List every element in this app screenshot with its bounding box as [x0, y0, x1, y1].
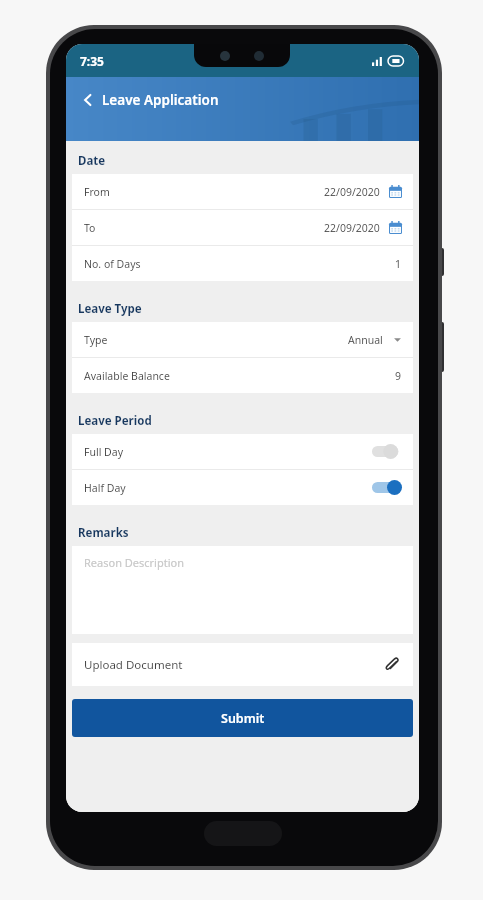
staticText: Leave Period	[78, 413, 152, 429]
staticText: 7:35	[80, 53, 104, 69]
staticText: 22/09/2020	[324, 185, 380, 199]
staticText: Type	[84, 333, 108, 347]
staticText: No. of Days	[84, 257, 141, 271]
button[interactable]: From	[72, 174, 413, 209]
staticText: Date	[78, 153, 106, 169]
staticText: 1	[395, 257, 402, 271]
button[interactable]: Type	[72, 322, 413, 357]
staticText: Half Day	[84, 481, 126, 495]
staticText: Full Day	[84, 445, 123, 459]
other: Attach document	[384, 657, 400, 673]
staticText: Leave Application	[102, 91, 219, 109]
staticText: Leave Type	[78, 301, 142, 317]
button[interactable]: Upload Document	[72, 643, 413, 686]
other: Back	[80, 92, 96, 108]
button[interactable]: Back	[76, 87, 223, 113]
staticText: 22/09/2020	[324, 221, 380, 235]
staticText: Submit	[221, 710, 265, 727]
staticText: To	[84, 221, 96, 235]
button[interactable]: Half Day	[72, 470, 413, 505]
button[interactable]: Submit	[72, 699, 413, 737]
staticText: Reason Description	[84, 555, 184, 570]
button[interactable]: Reason Description	[72, 546, 413, 634]
button[interactable]: Full Day	[72, 434, 413, 469]
staticText: Annual	[348, 333, 383, 347]
staticText: 9	[395, 369, 402, 383]
button[interactable]: Available Balance	[72, 358, 413, 393]
button[interactable]: No. of Days	[72, 246, 413, 281]
staticText: From	[84, 185, 110, 199]
staticText: Remarks	[78, 525, 129, 541]
button[interactable]: To	[72, 210, 413, 245]
staticText: Upload Document	[84, 657, 183, 673]
staticText: Available Balance	[84, 369, 170, 383]
